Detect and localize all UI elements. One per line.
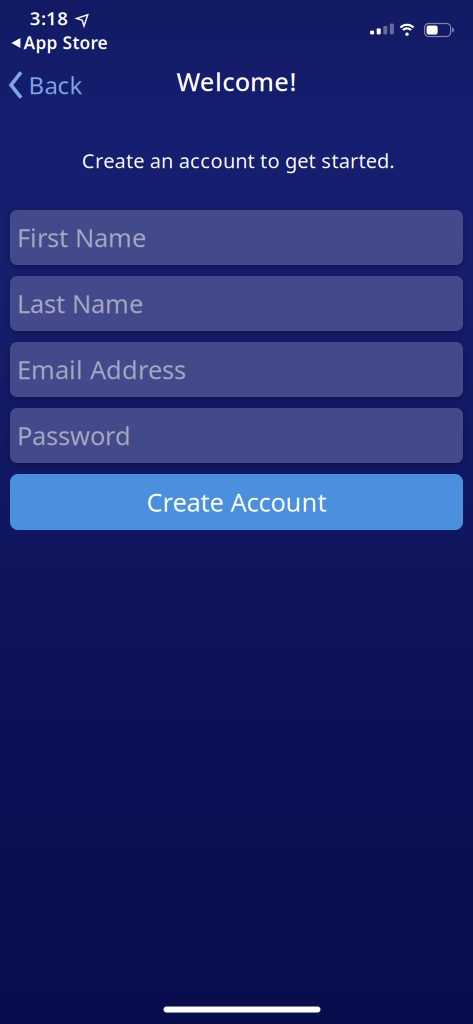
staticText: Last Name [17,287,143,320]
staticText: App Store [23,31,107,54]
staticText: Email Address [17,353,186,386]
staticText: Password [17,419,131,452]
staticText: Back [28,69,82,101]
staticText: Welcome! [176,65,297,98]
staticText: 3:18 [30,6,68,30]
staticText: First Name [17,221,146,254]
staticText: Create an account to get started. [82,147,394,174]
staticText: Create Account [146,485,326,519]
